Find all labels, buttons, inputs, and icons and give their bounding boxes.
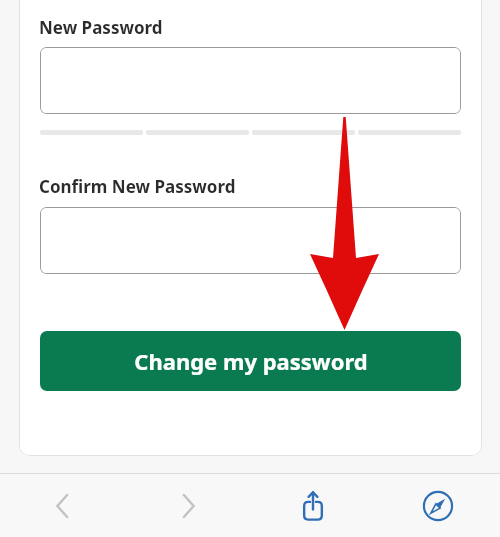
button[interactable]: Change my password <box>40 331 461 391</box>
staticText: Change my password <box>134 346 368 376</box>
button[interactable]: Share <box>250 474 375 537</box>
staticText: Confirm New Password <box>39 175 236 198</box>
button[interactable]: Browse <box>375 474 500 537</box>
button[interactable]: Confirm new password input <box>40 207 461 274</box>
staticText: New Password <box>39 16 163 39</box>
button[interactable]: Forward <box>125 474 250 537</box>
button[interactable]: New password input <box>40 47 461 114</box>
button[interactable]: Back <box>0 474 125 537</box>
